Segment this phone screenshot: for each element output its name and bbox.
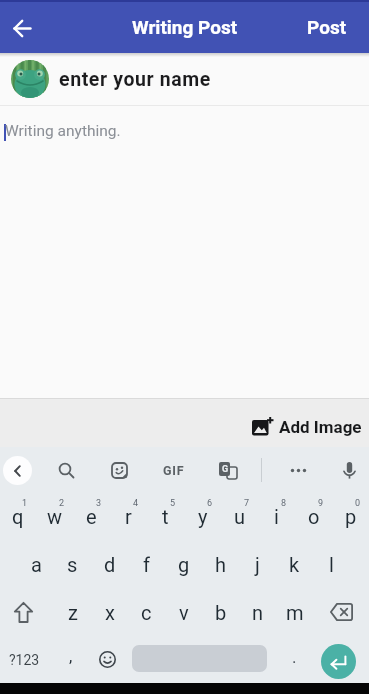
staticText: d [104, 553, 116, 576]
button[interactable]: s [54, 540, 91, 588]
staticText: G [222, 464, 229, 475]
button[interactable]: b [202, 588, 239, 636]
staticText: 6 [207, 498, 213, 509]
button[interactable]: n [239, 588, 276, 636]
button[interactable]: o [295, 492, 332, 540]
button[interactable] [90, 636, 125, 683]
staticText: GIF [163, 463, 185, 478]
staticText: l [329, 553, 334, 576]
staticText: y [198, 505, 208, 528]
staticText: x [105, 601, 115, 624]
button[interactable]: G [213, 456, 241, 484]
button[interactable] [132, 645, 267, 672]
staticText: i [274, 505, 279, 528]
staticText: c [141, 601, 152, 624]
staticText: k [289, 553, 300, 576]
button[interactable]: enter your name [0, 53, 369, 105]
staticText: n [252, 601, 264, 624]
staticText: t [162, 505, 169, 528]
staticText: p [345, 505, 357, 528]
button[interactable] [52, 456, 80, 484]
button[interactable]: y [184, 492, 221, 540]
button[interactable] [314, 588, 369, 636]
button[interactable]: j [239, 540, 276, 588]
button[interactable]: Add Image [252, 417, 362, 437]
button[interactable]: t [147, 492, 184, 540]
button[interactable]: p [332, 492, 369, 540]
button[interactable]: e [73, 492, 110, 540]
staticText: 0 [355, 498, 361, 509]
button[interactable]: Writing anything. [0, 106, 369, 398]
button[interactable]: q [0, 492, 36, 540]
staticText: 9 [318, 498, 324, 509]
staticText: j [255, 553, 260, 576]
button[interactable]: l [313, 540, 350, 588]
staticText: f [143, 553, 150, 576]
staticText: Writing Post [132, 16, 238, 38]
button[interactable]: w [36, 492, 73, 540]
button[interactable]: f [128, 540, 165, 588]
button[interactable]: a [18, 540, 54, 588]
staticText: u [234, 505, 246, 528]
staticText: ?123 [9, 652, 40, 668]
button[interactable]: v [165, 588, 202, 636]
button[interactable]: GIF [158, 456, 190, 484]
button[interactable] [6, 12, 38, 44]
staticText: , [69, 646, 73, 666]
button[interactable]: z [55, 588, 91, 636]
staticText: b [215, 601, 227, 624]
button[interactable]: x [91, 588, 128, 636]
staticText: s [67, 553, 78, 576]
staticText: 2 [59, 498, 65, 509]
staticText: z [68, 601, 78, 624]
button[interactable]: i [258, 492, 295, 540]
button[interactable]: k [276, 540, 313, 588]
button[interactable] [321, 644, 356, 679]
staticText: 8 [281, 498, 287, 509]
button[interactable]: g [165, 540, 202, 588]
staticText: 5 [170, 498, 176, 509]
button[interactable]: d [91, 540, 128, 588]
staticText: e [86, 505, 97, 528]
staticText: v [179, 601, 189, 624]
button[interactable]: ?123 [0, 636, 48, 683]
staticText: r [125, 505, 132, 528]
button[interactable]: Post [299, 8, 355, 46]
staticText: Post [307, 16, 347, 38]
button[interactable]: c [128, 588, 165, 636]
button[interactable] [3, 456, 32, 485]
staticText: 3 [96, 498, 102, 509]
staticText: enter your name [59, 68, 211, 91]
staticText: m [286, 601, 304, 624]
button[interactable]: h [202, 540, 239, 588]
button[interactable]: r [110, 492, 147, 540]
staticText: w [47, 505, 63, 528]
staticText: 1 [22, 498, 28, 509]
button[interactable]: . [277, 636, 312, 683]
staticText: o [308, 505, 320, 528]
button[interactable] [335, 456, 363, 484]
staticText: . [292, 647, 297, 667]
button[interactable] [11, 60, 49, 98]
staticText: h [215, 553, 227, 576]
button[interactable]: u [221, 492, 258, 540]
staticText: Add Image [279, 417, 362, 437]
button[interactable] [0, 588, 55, 636]
staticText: q [12, 505, 24, 528]
button[interactable]: m [276, 588, 313, 636]
staticText: 7 [244, 498, 250, 509]
staticText: a [31, 553, 42, 576]
button[interactable]: , [52, 636, 89, 683]
staticText: Writing anything. [5, 122, 121, 140]
staticText: 4 [133, 498, 139, 509]
button[interactable] [105, 456, 133, 484]
staticText: g [178, 553, 190, 576]
button[interactable] [284, 456, 312, 484]
